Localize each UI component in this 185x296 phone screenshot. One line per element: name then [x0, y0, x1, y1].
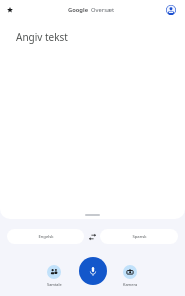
staticText: Google [68, 6, 89, 14]
button[interactable]: Saved translations [0, 0, 20, 20]
button[interactable]: Engelsk [7, 229, 84, 244]
button[interactable]: Camera [116, 265, 144, 287]
staticText: Oversæt [91, 6, 115, 14]
staticText: Angiv tekst [16, 30, 68, 44]
staticText: Engelsk [38, 234, 54, 240]
button[interactable]: Spansk [100, 229, 178, 244]
staticText: Kamera [123, 282, 138, 287]
staticText: Spansk [132, 234, 147, 240]
button[interactable]: Microphone [79, 257, 107, 285]
button[interactable]: Conversation mode [40, 265, 68, 287]
staticText: Samtale [47, 282, 62, 287]
button[interactable]: Account [157, 0, 185, 20]
button[interactable]: Swap languages [84, 229, 100, 244]
